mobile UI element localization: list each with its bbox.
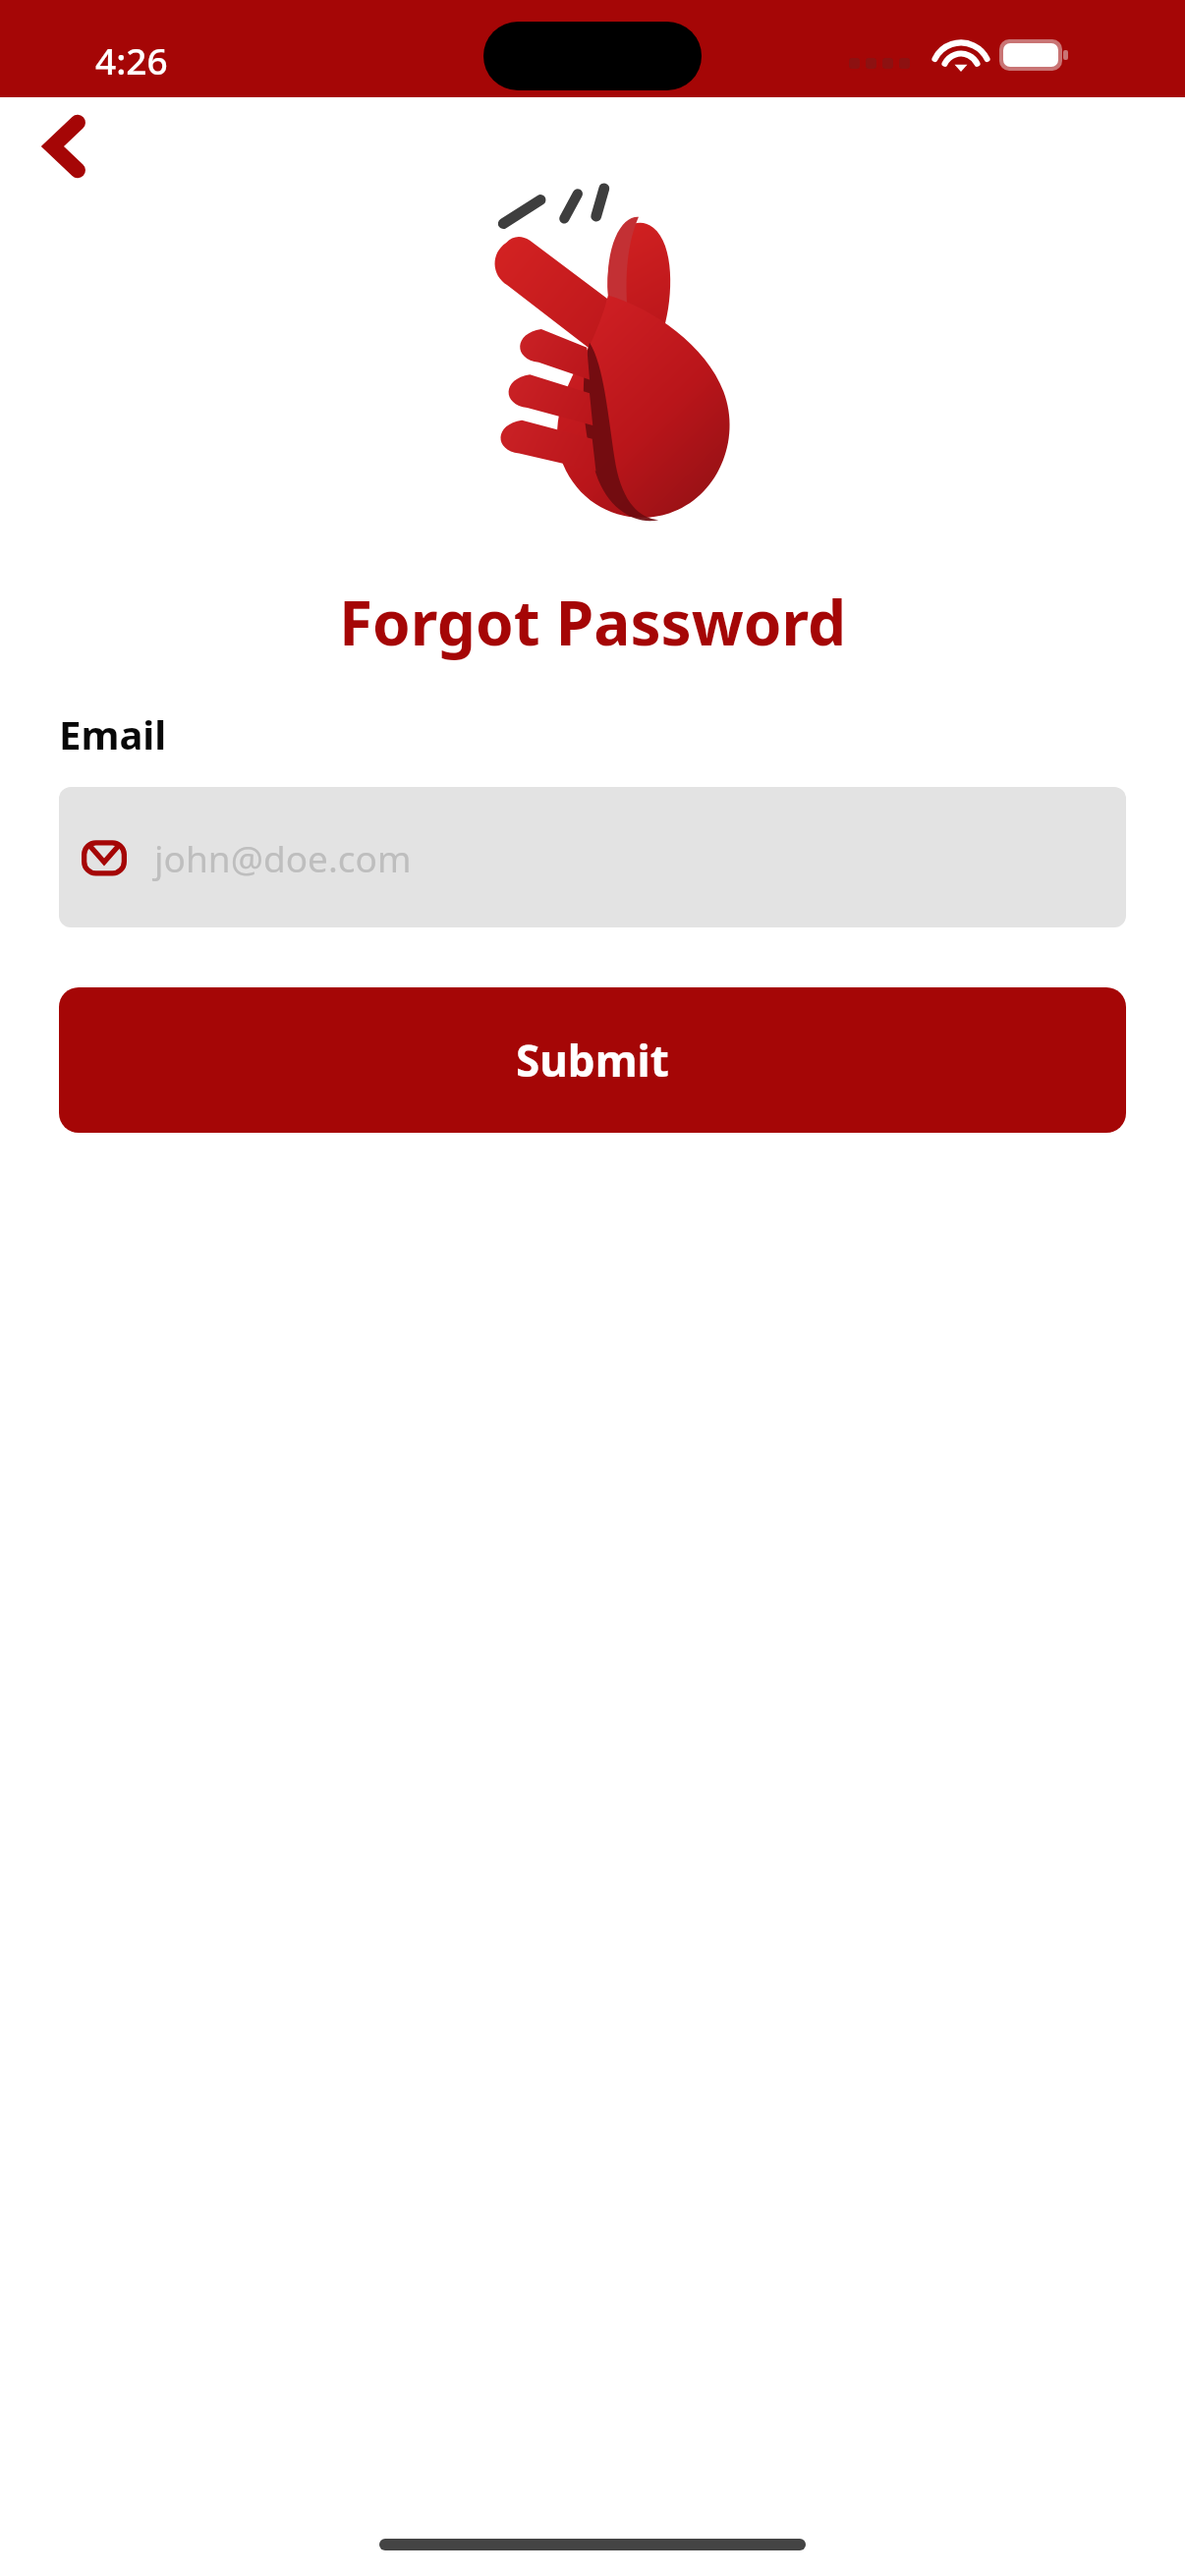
staticText: 4:26 [95, 35, 168, 84]
staticText: Submit [516, 1031, 669, 1090]
button[interactable]: Back [31, 113, 98, 180]
button[interactable]: Submit [59, 987, 1126, 1133]
staticText: Email [59, 707, 167, 760]
button[interactable]: john@doe.com [59, 787, 1126, 927]
staticText: john@doe.com [154, 833, 412, 882]
staticText: Forgot Password [0, 581, 1185, 663]
